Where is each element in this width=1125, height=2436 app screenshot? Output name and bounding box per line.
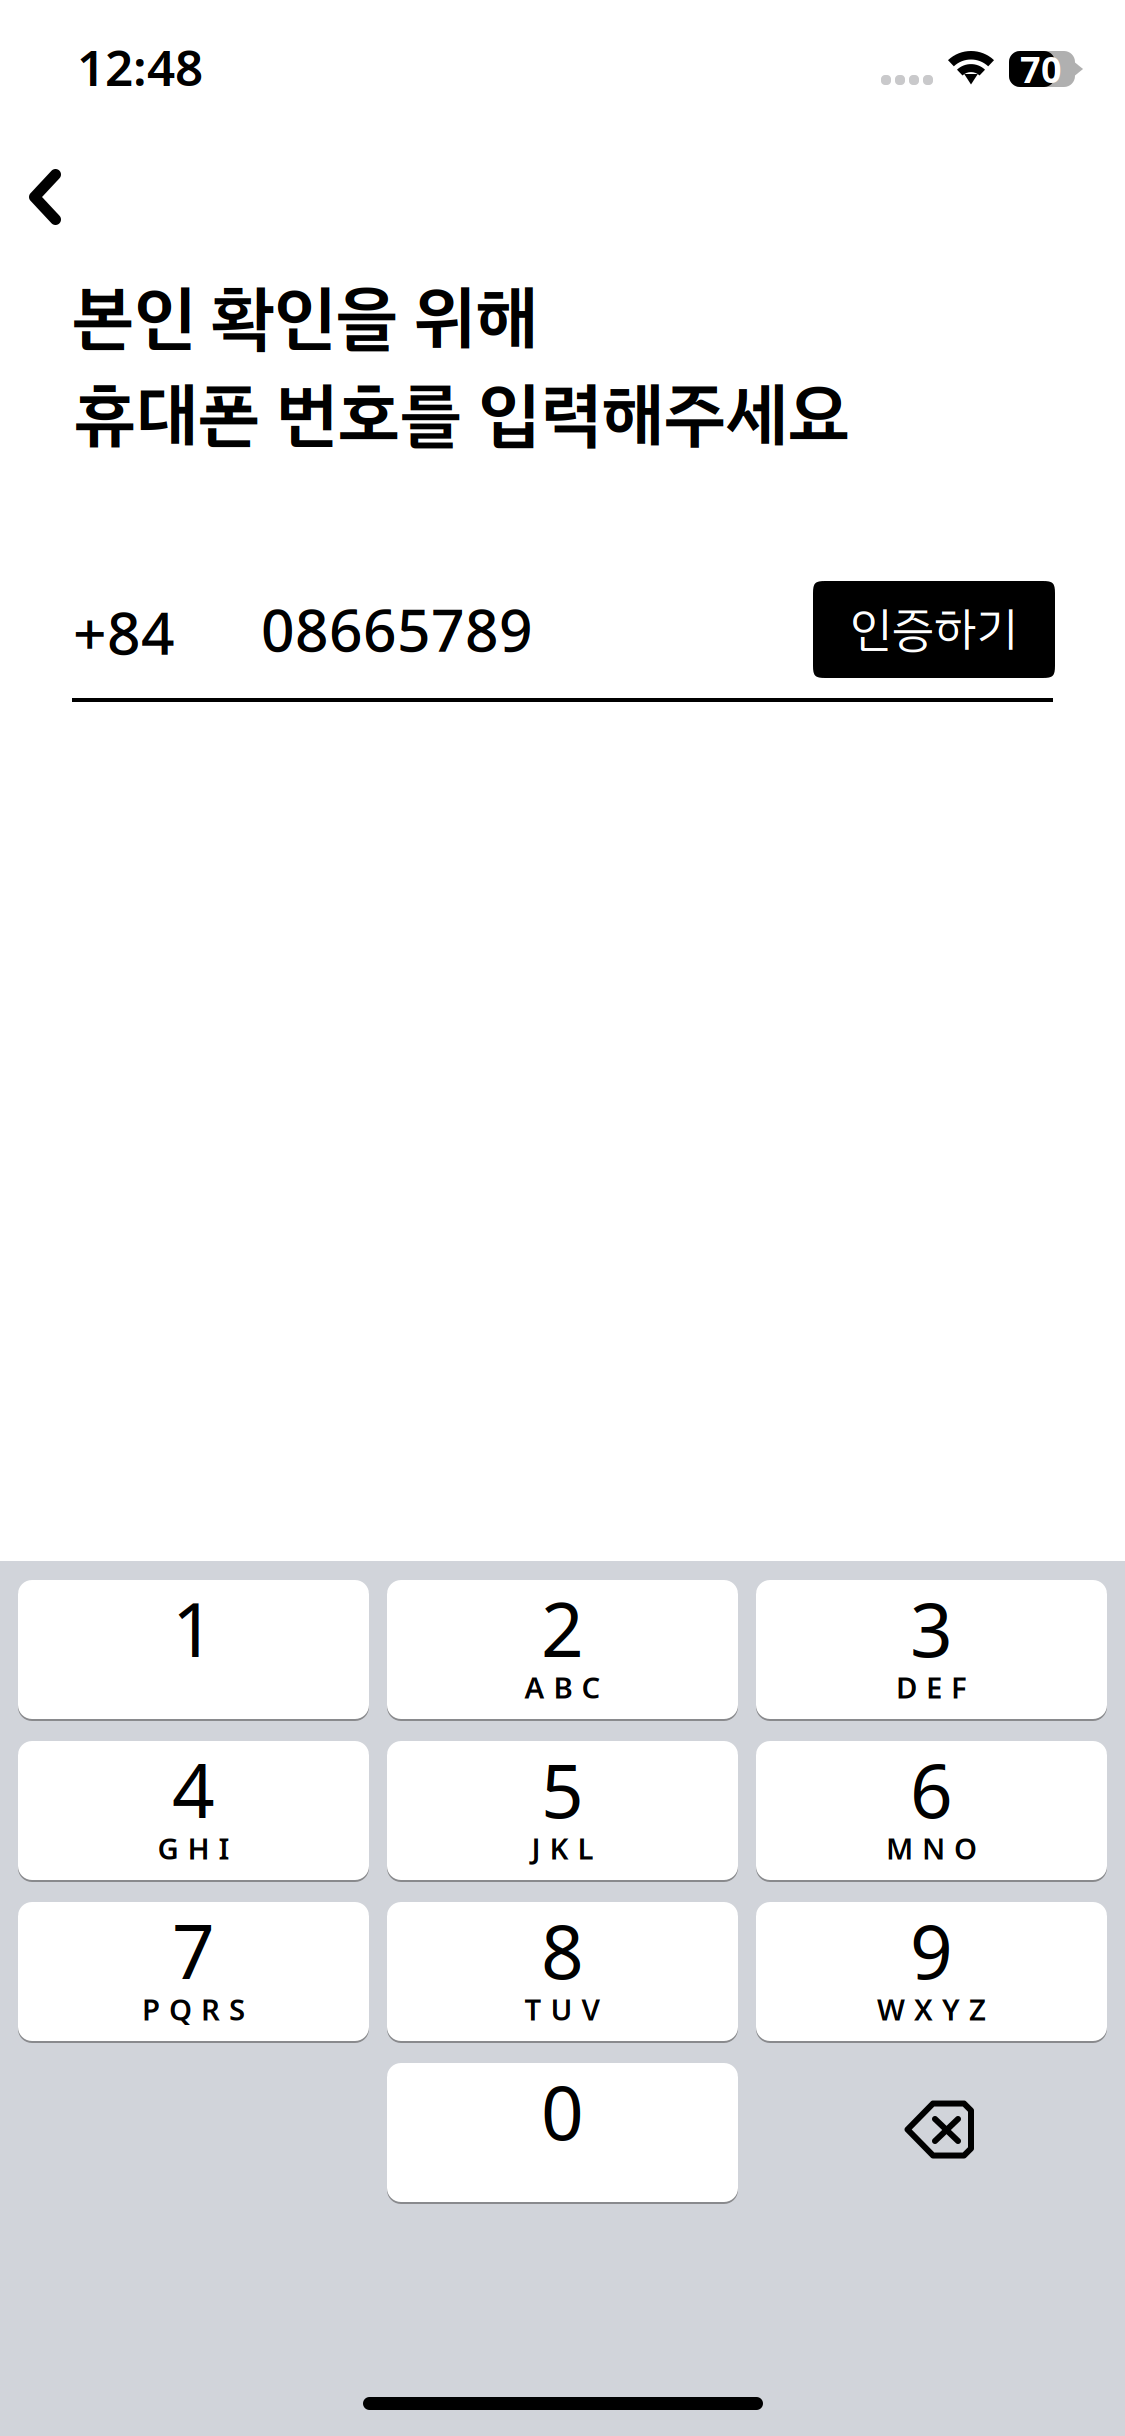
staticText: MNO (886, 1828, 977, 1867)
button[interactable]: 6 (756, 1741, 1107, 1882)
button[interactable]: 5 (387, 1741, 738, 1882)
staticText: 12:48 (77, 34, 203, 99)
staticText: 5 (541, 1739, 584, 1839)
staticText: 2 (541, 1578, 584, 1678)
button[interactable]: 인증하기 (813, 581, 1055, 678)
button[interactable]: 4 (18, 1741, 369, 1882)
button[interactable]: 2 (387, 1580, 738, 1721)
button[interactable]: +84 (70, 569, 230, 665)
staticText: 4 (172, 1739, 215, 1839)
staticText: ABC (524, 1667, 600, 1706)
staticText: +84 (73, 593, 175, 671)
staticText: 7 (172, 1900, 215, 2000)
staticText: 인증하기 (850, 594, 1018, 664)
button[interactable]: 3 (756, 1580, 1107, 1721)
staticText: 8 (541, 1900, 584, 2000)
staticText: 70 (1020, 45, 1062, 93)
staticText: JKL (531, 1828, 593, 1867)
button[interactable]: Back (0, 145, 112, 249)
button[interactable]: 1 (18, 1580, 369, 1721)
staticText: 3 (910, 1578, 953, 1678)
staticText: 9 (910, 1900, 953, 2000)
button[interactable]: 8 (387, 1902, 738, 2043)
button[interactable]: 7 (18, 1902, 369, 2043)
staticText: 휴대폰 번호를 입력해주세요 (74, 363, 850, 467)
staticText: DEF (896, 1667, 967, 1706)
button[interactable]: 0 (387, 2063, 738, 2204)
staticText: 1 (172, 1578, 215, 1678)
button[interactable]: Delete (756, 2063, 1107, 2204)
staticText: GHI (157, 1828, 229, 1867)
button[interactable]: 08665789 (260, 569, 820, 665)
staticText: 본인 확인을 위해 (72, 266, 538, 370)
staticText: TUV (524, 1989, 600, 2028)
staticText: WXYZ (877, 1989, 986, 2028)
staticText: 08665789 (261, 590, 533, 668)
staticText: 6 (910, 1739, 953, 1839)
staticText: 0 (541, 2061, 584, 2161)
staticText: PQRS (142, 1989, 245, 2028)
button[interactable]: 9 (756, 1902, 1107, 2043)
